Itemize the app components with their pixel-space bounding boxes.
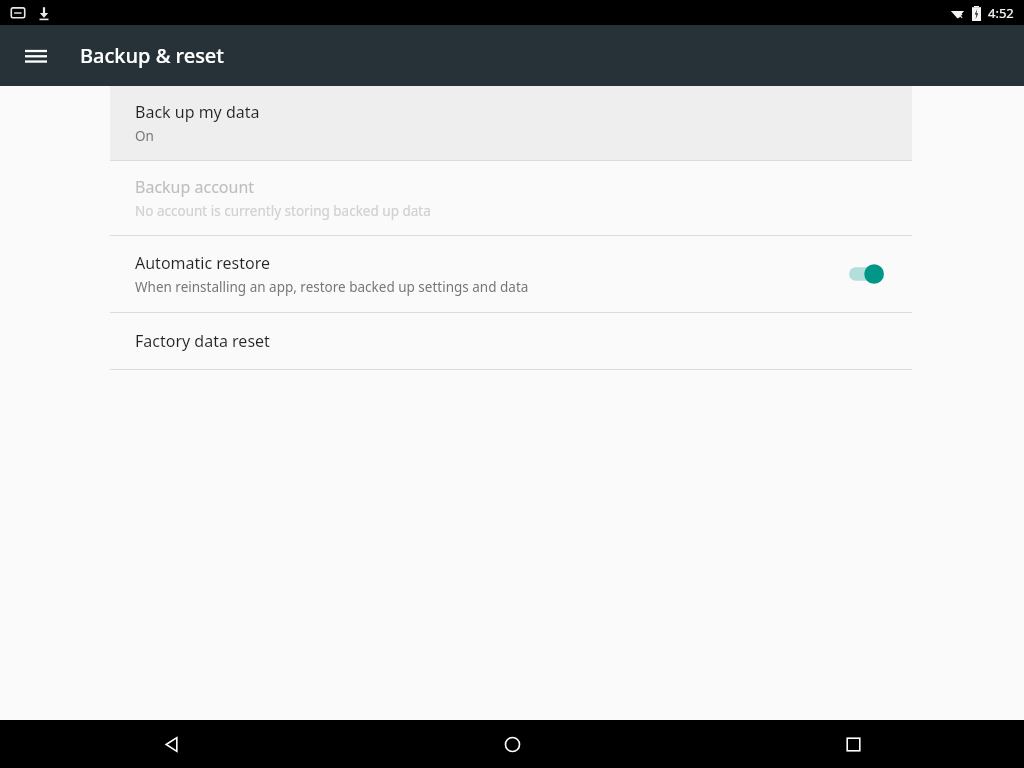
staticText: On: [135, 127, 154, 145]
button[interactable]: Back: [0, 720, 342, 768]
staticText: 4:52: [988, 4, 1014, 22]
button[interactable]: Automatic restore toggle, on: [849, 257, 895, 291]
staticText: Factory data reset: [135, 330, 270, 352]
staticText: When reinstalling an app, restore backed…: [135, 278, 529, 296]
staticText: Backup & reset: [80, 42, 224, 69]
staticText: Backup account: [135, 176, 255, 198]
staticText: Back up my data: [135, 101, 260, 123]
button[interactable]: Recent apps: [683, 720, 1024, 768]
button[interactable]: Home: [342, 720, 683, 768]
staticText: Automatic restore: [135, 252, 270, 274]
button[interactable]: Automatic restore: [0, 236, 1024, 312]
button[interactable]: Backup account: [0, 161, 1024, 235]
button[interactable]: Factory data reset: [0, 313, 1024, 369]
button[interactable]: Open navigation drawer: [12, 32, 60, 80]
staticText: No account is currently storing backed u…: [135, 202, 431, 220]
button[interactable]: Back up my data: [0, 86, 1024, 160]
